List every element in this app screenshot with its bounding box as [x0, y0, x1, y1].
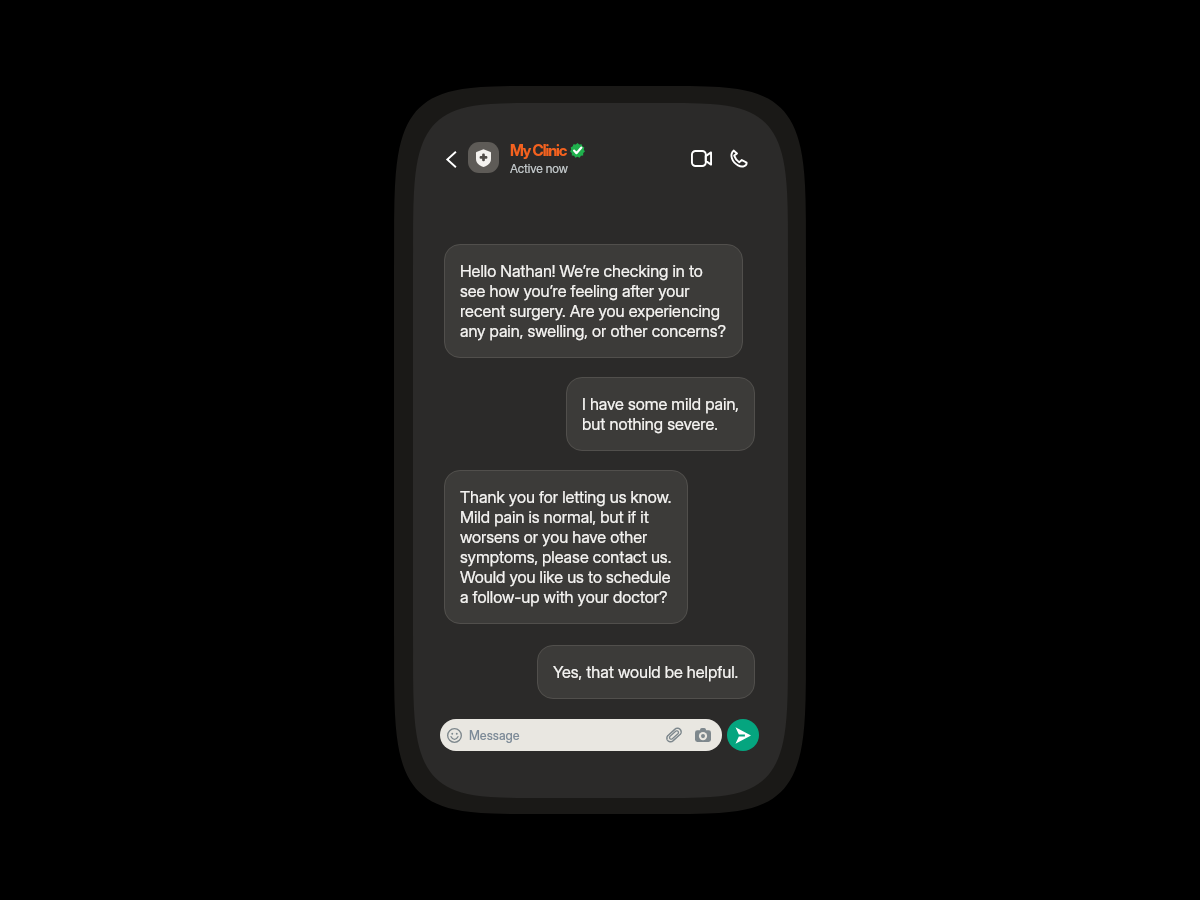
staticText: Message: [469, 728, 520, 743]
staticText: I have some mild pain, but nothing sever…: [582, 394, 739, 434]
button[interactable]: Video call: [688, 145, 714, 171]
button[interactable]: Thank you for letting us know. Mild pain…: [444, 470, 688, 624]
button[interactable]: My Clinic profile: [468, 142, 499, 173]
staticText: My Clinic: [510, 141, 567, 160]
staticText: Thank you for letting us know. Mild pain…: [460, 487, 672, 607]
button[interactable]: Yes, that would be helpful.: [537, 645, 755, 699]
button[interactable]: My Clinic: [510, 141, 585, 176]
button[interactable]: Send: [727, 719, 759, 751]
staticText: Hello Nathan! We’re checking in to see h…: [460, 261, 727, 341]
button[interactable]: Back: [439, 147, 463, 171]
staticText: Active now: [510, 161, 568, 176]
button[interactable]: I have some mild pain, but nothing sever…: [566, 377, 755, 451]
button[interactable]: Call: [725, 145, 751, 171]
staticText: Yes, that would be helpful.: [553, 662, 739, 682]
button[interactable]: Message: [440, 719, 722, 751]
button[interactable]: Hello Nathan! We’re checking in to see h…: [444, 244, 743, 358]
